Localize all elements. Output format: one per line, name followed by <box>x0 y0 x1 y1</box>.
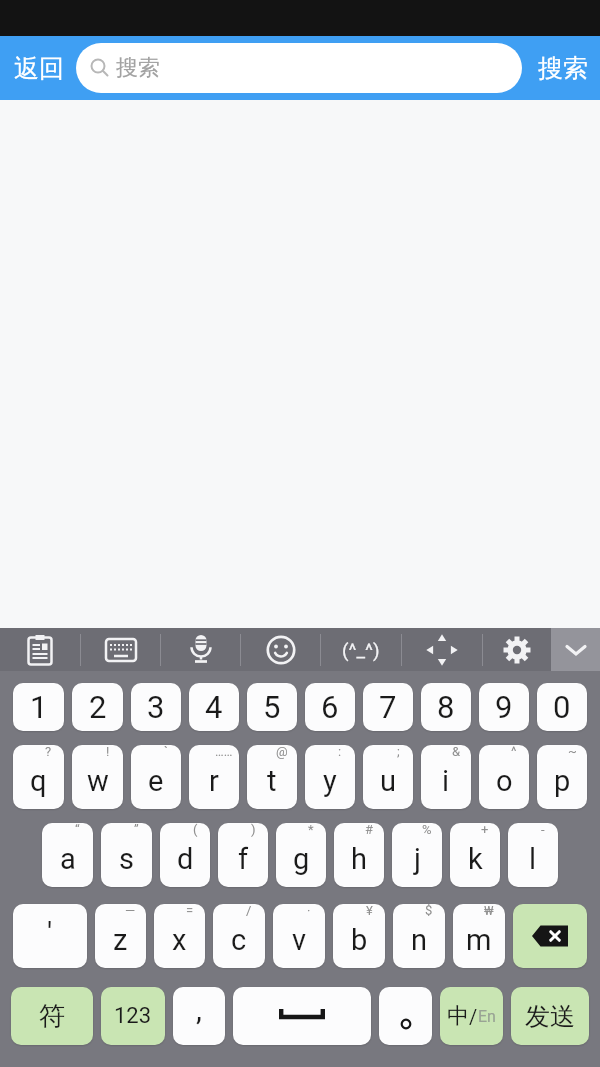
button[interactable]: * <box>276 823 326 887</box>
staticText: ₩ <box>484 904 494 918</box>
staticText: @ <box>276 745 288 759</box>
staticText: * <box>308 823 314 837</box>
button[interactable]: @ <box>247 745 297 809</box>
button[interactable]: = <box>154 904 205 968</box>
staticText: 返回 <box>14 53 64 84</box>
staticText: · <box>307 904 311 918</box>
button[interactable]: ₩ <box>453 904 505 968</box>
button[interactable]: “ <box>42 823 93 887</box>
staticText: ~ <box>568 745 577 759</box>
staticText: # <box>365 823 374 837</box>
staticText: z <box>113 923 128 957</box>
staticText: f <box>238 842 249 876</box>
button[interactable]: (^_^) <box>321 628 401 671</box>
button[interactable] <box>241 628 320 671</box>
button[interactable]: 搜索 <box>76 43 522 93</box>
staticText: y <box>323 764 337 798</box>
button[interactable]: ~ <box>537 745 587 809</box>
staticText: n <box>411 923 428 957</box>
button[interactable]: ) <box>218 823 268 887</box>
button[interactable]: - <box>508 823 558 887</box>
button[interactable]: …… <box>189 745 239 809</box>
button[interactable]: ` <box>131 745 181 809</box>
button[interactable]: 5 <box>247 683 297 731</box>
staticText: b <box>351 923 368 957</box>
button[interactable]: 3 <box>131 683 181 731</box>
button[interactable] <box>161 628 240 671</box>
staticText: c <box>231 923 247 957</box>
button[interactable] <box>81 628 160 671</box>
staticText: 8 <box>437 689 455 725</box>
button[interactable]: ! <box>72 745 123 809</box>
staticText: u <box>380 764 396 798</box>
staticText: 符 <box>39 1000 65 1033</box>
staticText: ' <box>47 915 53 950</box>
staticText: ) <box>251 823 256 837</box>
button[interactable]: 2 <box>72 683 123 731</box>
staticText: r <box>209 764 219 798</box>
staticText: …… <box>215 745 233 759</box>
button[interactable]: ^ <box>479 745 529 809</box>
button[interactable]: ” <box>101 823 152 887</box>
staticText: 1 <box>30 689 48 725</box>
staticText: e <box>148 764 164 798</box>
button[interactable]: 9 <box>479 683 529 731</box>
staticText: w <box>87 764 109 798</box>
staticText: ? <box>45 745 52 759</box>
staticText: ¥ <box>366 904 373 918</box>
button[interactable]: + <box>450 823 500 887</box>
staticText: (^_^) <box>342 639 380 661</box>
button[interactable]: ? <box>13 745 64 809</box>
staticText: / <box>469 1005 478 1028</box>
staticText: 9 <box>495 689 513 725</box>
button[interactable]: 8 <box>421 683 471 731</box>
staticText: 中 <box>447 1002 469 1030</box>
button[interactable]: ¥ <box>333 904 385 968</box>
button[interactable]: 4 <box>189 683 239 731</box>
button[interactable]: 7 <box>363 683 413 731</box>
button[interactable]: 123 <box>101 987 165 1045</box>
button[interactable] <box>513 904 587 968</box>
staticText: & <box>452 745 461 759</box>
staticText: ” <box>134 823 139 837</box>
button[interactable] <box>483 628 551 671</box>
button[interactable]: 返回 <box>6 45 72 92</box>
staticText: h <box>351 842 367 876</box>
button[interactable]: 0 <box>537 683 587 731</box>
button[interactable]: $ <box>393 904 445 968</box>
button[interactable]: ; <box>363 745 413 809</box>
button[interactable]: ' <box>13 904 87 968</box>
button[interactable]: 6 <box>305 683 355 731</box>
staticText: j <box>414 842 421 876</box>
button[interactable]: 中 <box>440 987 503 1045</box>
button[interactable]: 发送 <box>511 987 589 1045</box>
staticText: 搜索 <box>538 53 588 84</box>
button[interactable]: ( <box>160 823 210 887</box>
button[interactable]: , <box>173 987 225 1045</box>
button[interactable]: # <box>334 823 384 887</box>
staticText: m <box>466 923 492 957</box>
button[interactable]: — <box>95 904 146 968</box>
button[interactable] <box>402 628 482 671</box>
button[interactable]: · <box>273 904 325 968</box>
button[interactable] <box>551 628 600 671</box>
staticText: t <box>267 764 277 798</box>
button[interactable]: 符 <box>11 987 93 1045</box>
staticText: q <box>30 764 47 798</box>
button[interactable] <box>0 628 80 671</box>
staticText: p <box>554 764 571 798</box>
staticText: a <box>60 842 76 876</box>
staticText: ^ <box>511 745 517 759</box>
button[interactable] <box>379 987 432 1045</box>
staticText: + <box>481 823 489 837</box>
staticText: x <box>172 923 187 957</box>
staticText: 5 <box>263 689 281 725</box>
button[interactable]: : <box>305 745 355 809</box>
button[interactable]: 1 <box>13 683 64 731</box>
button[interactable]: / <box>213 904 265 968</box>
button[interactable]: % <box>392 823 442 887</box>
staticText: l <box>529 842 537 876</box>
button[interactable] <box>233 987 371 1045</box>
button[interactable]: 搜索 <box>532 45 594 92</box>
button[interactable]: & <box>421 745 471 809</box>
